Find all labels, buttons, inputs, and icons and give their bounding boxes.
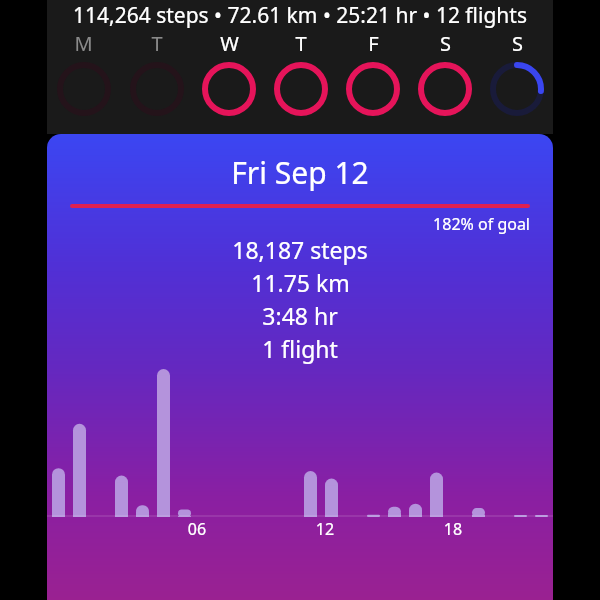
button[interactable]: S xyxy=(481,30,553,116)
staticText: 18,187 steps xyxy=(232,234,368,265)
button[interactable]: T xyxy=(265,30,337,116)
button[interactable]: Fri Sep 12 xyxy=(47,134,553,600)
staticText: 18 xyxy=(438,518,468,540)
button[interactable]: T xyxy=(120,30,193,116)
button[interactable]: S xyxy=(409,30,481,116)
staticText: 11.75 km xyxy=(251,267,350,298)
button[interactable]: W xyxy=(193,30,265,116)
staticText: Fri Sep 12 xyxy=(47,152,553,193)
staticText: F xyxy=(368,30,379,57)
staticText: 3:48 hr xyxy=(262,300,338,331)
staticText: 06 xyxy=(182,518,212,540)
staticText: S xyxy=(512,30,523,57)
staticText: 114,264 steps • 72.61 km • 25:21 hr • 12… xyxy=(47,1,553,30)
staticText: S xyxy=(440,30,451,57)
button[interactable]: F xyxy=(337,30,409,116)
staticText: M xyxy=(74,30,93,57)
staticText: 182% of goal xyxy=(47,213,530,235)
button[interactable]: M xyxy=(47,30,120,116)
staticText: T xyxy=(295,30,307,57)
staticText: 1 flight xyxy=(262,333,338,364)
staticText: W xyxy=(220,30,239,57)
staticText: T xyxy=(151,30,163,57)
staticText: 12 xyxy=(310,518,340,540)
